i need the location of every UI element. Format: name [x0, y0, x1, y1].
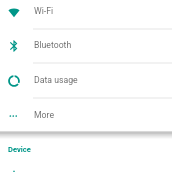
other: Display — [7, 170, 21, 172]
staticText: More — [34, 110, 55, 120]
other: Wi-Fi — [7, 5, 21, 19]
button[interactable]: More — [0, 98, 172, 133]
button[interactable]: Display — [0, 159, 172, 172]
button[interactable]: Device — [8, 144, 172, 166]
staticText: Device — [8, 145, 31, 154]
button[interactable]: Data usage — [0, 63, 172, 98]
button[interactable]: Bluetooth — [0, 28, 172, 63]
other: More — [7, 109, 21, 123]
button[interactable]: Wi-Fi — [0, 0, 172, 29]
other: Bluetooth — [7, 39, 21, 53]
staticText: Bluetooth — [34, 40, 72, 50]
staticText: Wi-Fi — [34, 6, 54, 16]
other: Data usage — [7, 74, 21, 88]
staticText: Data usage — [34, 75, 78, 85]
